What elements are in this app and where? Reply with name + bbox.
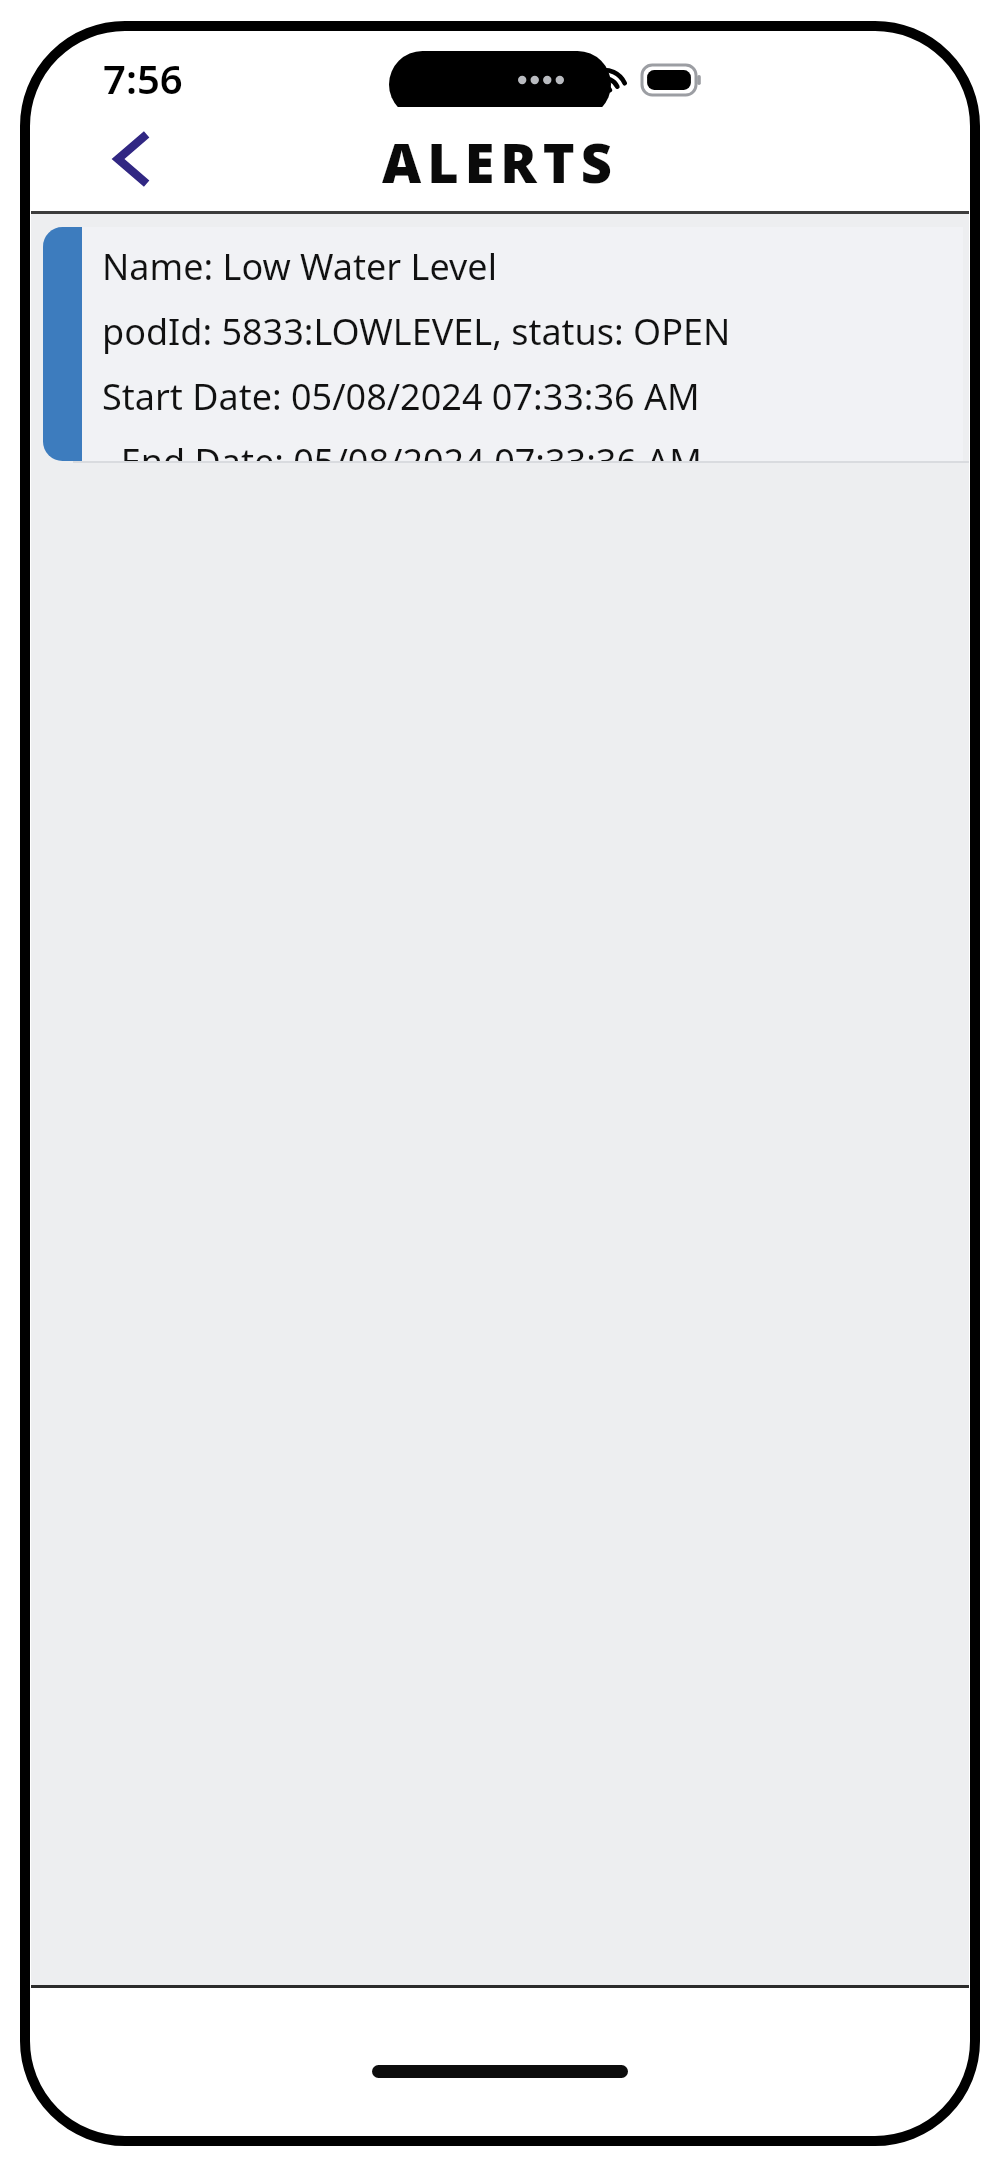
staticText: 7:56 [103, 51, 183, 105]
staticText: Name: Low Water Level [102, 242, 497, 291]
button[interactable]: Back [87, 115, 175, 203]
staticText: podId: 5833:LOWLEVEL, status: OPEN [102, 307, 731, 356]
staticText: ALERTS [382, 125, 618, 199]
staticText: Start Date: 05/08/2024 07:33:36 AM [102, 372, 700, 421]
button[interactable]: Name: Low Water Level [43, 227, 963, 461]
staticText: End Date: 05/08/2024 07:33:36 AM [102, 437, 703, 461]
